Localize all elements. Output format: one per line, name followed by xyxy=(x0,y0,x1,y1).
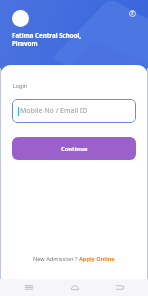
staticText: Fatima Central School, xyxy=(12,31,82,39)
button[interactable]: Home xyxy=(60,279,89,296)
staticText: ? xyxy=(131,10,134,17)
staticText: New Admission ? xyxy=(33,255,79,263)
button[interactable]: School logo xyxy=(12,10,29,27)
staticText: Login xyxy=(13,82,28,89)
button[interactable]: Back xyxy=(105,279,134,296)
button[interactable]: Apply Online xyxy=(79,255,115,263)
staticText: Continue xyxy=(61,145,88,153)
button[interactable]: Mobile No / Email ID xyxy=(12,99,136,123)
staticText: Mobile No / Email ID xyxy=(20,106,88,116)
button[interactable]: Help xyxy=(129,10,136,17)
staticText: Piravom xyxy=(12,39,38,47)
button[interactable]: Continue xyxy=(12,137,136,160)
button[interactable]: Recent apps xyxy=(14,279,43,296)
